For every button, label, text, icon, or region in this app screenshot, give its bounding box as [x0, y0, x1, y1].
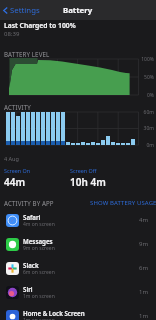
staticText: Settings — [10, 5, 40, 16]
button[interactable]: Messages — [0, 232, 156, 256]
staticText: 50% — [138, 74, 154, 81]
staticText: 0% — [138, 92, 154, 99]
staticText: 1m on screen — [23, 293, 55, 300]
staticText: Last Charged to 100% — [4, 21, 76, 30]
staticText: 1m — [139, 312, 149, 320]
staticText: 4m on screen — [23, 221, 55, 228]
staticText: 08:39 — [4, 30, 20, 38]
staticText: 10h 4m — [70, 175, 106, 189]
staticText: ACTIVITY BY APP — [4, 199, 54, 207]
staticText: Home & Lock Screen — [23, 309, 85, 317]
staticText: 9m on screen — [23, 245, 55, 252]
button[interactable]: Siri — [0, 280, 156, 304]
staticText: 30m — [138, 125, 154, 132]
staticText: 1m — [139, 288, 149, 296]
button[interactable]: Settings — [0, 2, 44, 19]
staticText: BATTERY LEVEL — [4, 50, 50, 58]
button[interactable]: Safari — [0, 208, 156, 232]
staticText: 9m — [139, 240, 149, 248]
staticText: 0m — [138, 142, 154, 149]
staticText: Siri — [23, 285, 33, 293]
staticText: Battery — [63, 5, 93, 16]
staticText: Screen Off — [70, 167, 97, 174]
button[interactable]: SHOW BATTERY USAGE — [88, 197, 156, 209]
staticText: 4 Aug — [4, 155, 19, 162]
staticText: Screen On — [4, 167, 31, 174]
staticText: 4m — [139, 216, 149, 224]
staticText: Safari — [23, 213, 41, 221]
staticText: 44m — [4, 175, 26, 189]
staticText: 60m — [138, 109, 154, 116]
button[interactable]: Home & Lock Screen — [0, 304, 156, 320]
staticText: 1m on screen — [23, 317, 55, 320]
staticText: SHOW BATTERY USAGE — [90, 199, 156, 207]
staticText: 6m on screen — [23, 269, 55, 276]
staticText: 100% — [138, 56, 154, 63]
staticText: Slack — [23, 261, 39, 269]
staticText: ACTIVITY — [4, 103, 31, 111]
staticText: 6m — [139, 264, 149, 272]
button[interactable]: Slack — [0, 256, 156, 280]
staticText: Messages — [23, 237, 53, 245]
